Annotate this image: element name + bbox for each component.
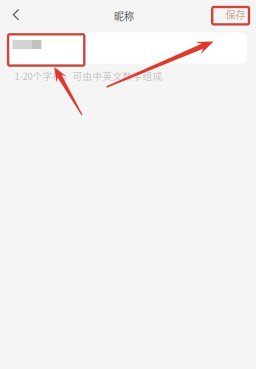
button[interactable]: 保存 [217,5,254,23]
staticText: 1-20个字符，可由中英文数字组成 [14,68,162,82]
button[interactable]: 昵称输入框 [9,33,247,64]
button[interactable]: 返回 [0,1,38,29]
staticText: 保存 [225,7,245,22]
staticText: 昵称 [114,9,134,23]
